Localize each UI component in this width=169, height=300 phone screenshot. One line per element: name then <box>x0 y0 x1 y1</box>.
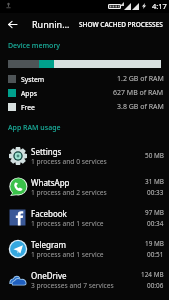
staticText: 124 MB <box>141 270 164 279</box>
staticText: 19 MB <box>145 239 164 248</box>
staticText: 00:33 <box>147 188 164 197</box>
staticText: SHOW CACHED PROCESSES <box>79 20 163 29</box>
staticText: 3.8 GB of RAM <box>117 102 164 112</box>
staticText: 00:06 <box>147 281 164 290</box>
staticText: OneDrive <box>31 270 67 281</box>
staticText: 3 processes and 7 services <box>31 281 114 290</box>
staticText: 627 MB of RAM <box>113 88 164 98</box>
staticText: 1.2 GB of RAM <box>117 74 164 84</box>
button[interactable]: Apps <box>0 86 169 100</box>
staticText: 1 process and 1 service <box>31 250 104 259</box>
staticText: 4:17 <box>152 1 167 11</box>
button[interactable]: System <box>0 72 169 86</box>
staticText: Telegram <box>31 239 67 250</box>
staticText: App RAM usage <box>8 123 61 133</box>
button[interactable]: WhatsApp <box>0 171 169 202</box>
staticText: WhatsApp <box>31 177 70 188</box>
button[interactable]: Settings <box>0 140 169 171</box>
staticText: Free <box>21 103 35 112</box>
staticText: Device memory <box>8 41 61 51</box>
button[interactable]: Back <box>1 13 23 35</box>
button[interactable]: SHOW CACHED PROCESSES <box>78 13 164 35</box>
staticText: Facebook <box>31 208 67 219</box>
staticText: Apps <box>21 89 37 98</box>
staticText: 97 MB <box>145 208 164 217</box>
staticText: 1 process and 1 service <box>31 219 104 228</box>
staticText: 1 process and 2 services <box>31 188 107 197</box>
staticText: System <box>21 75 45 84</box>
button[interactable]: OneDrive <box>0 264 169 295</box>
button[interactable]: Facebook <box>0 202 169 233</box>
staticText: Settings <box>31 146 62 157</box>
staticText: 50 MB <box>145 151 164 160</box>
staticText: 00:51 <box>147 250 164 259</box>
button[interactable]: Telegram <box>0 233 169 264</box>
staticText: Runnin… <box>32 18 70 30</box>
staticText: 31 MB <box>145 177 164 186</box>
staticText: 00:34 <box>147 219 164 228</box>
staticText: 1 process and 0 services <box>31 157 107 166</box>
button[interactable]: Free <box>0 100 169 114</box>
